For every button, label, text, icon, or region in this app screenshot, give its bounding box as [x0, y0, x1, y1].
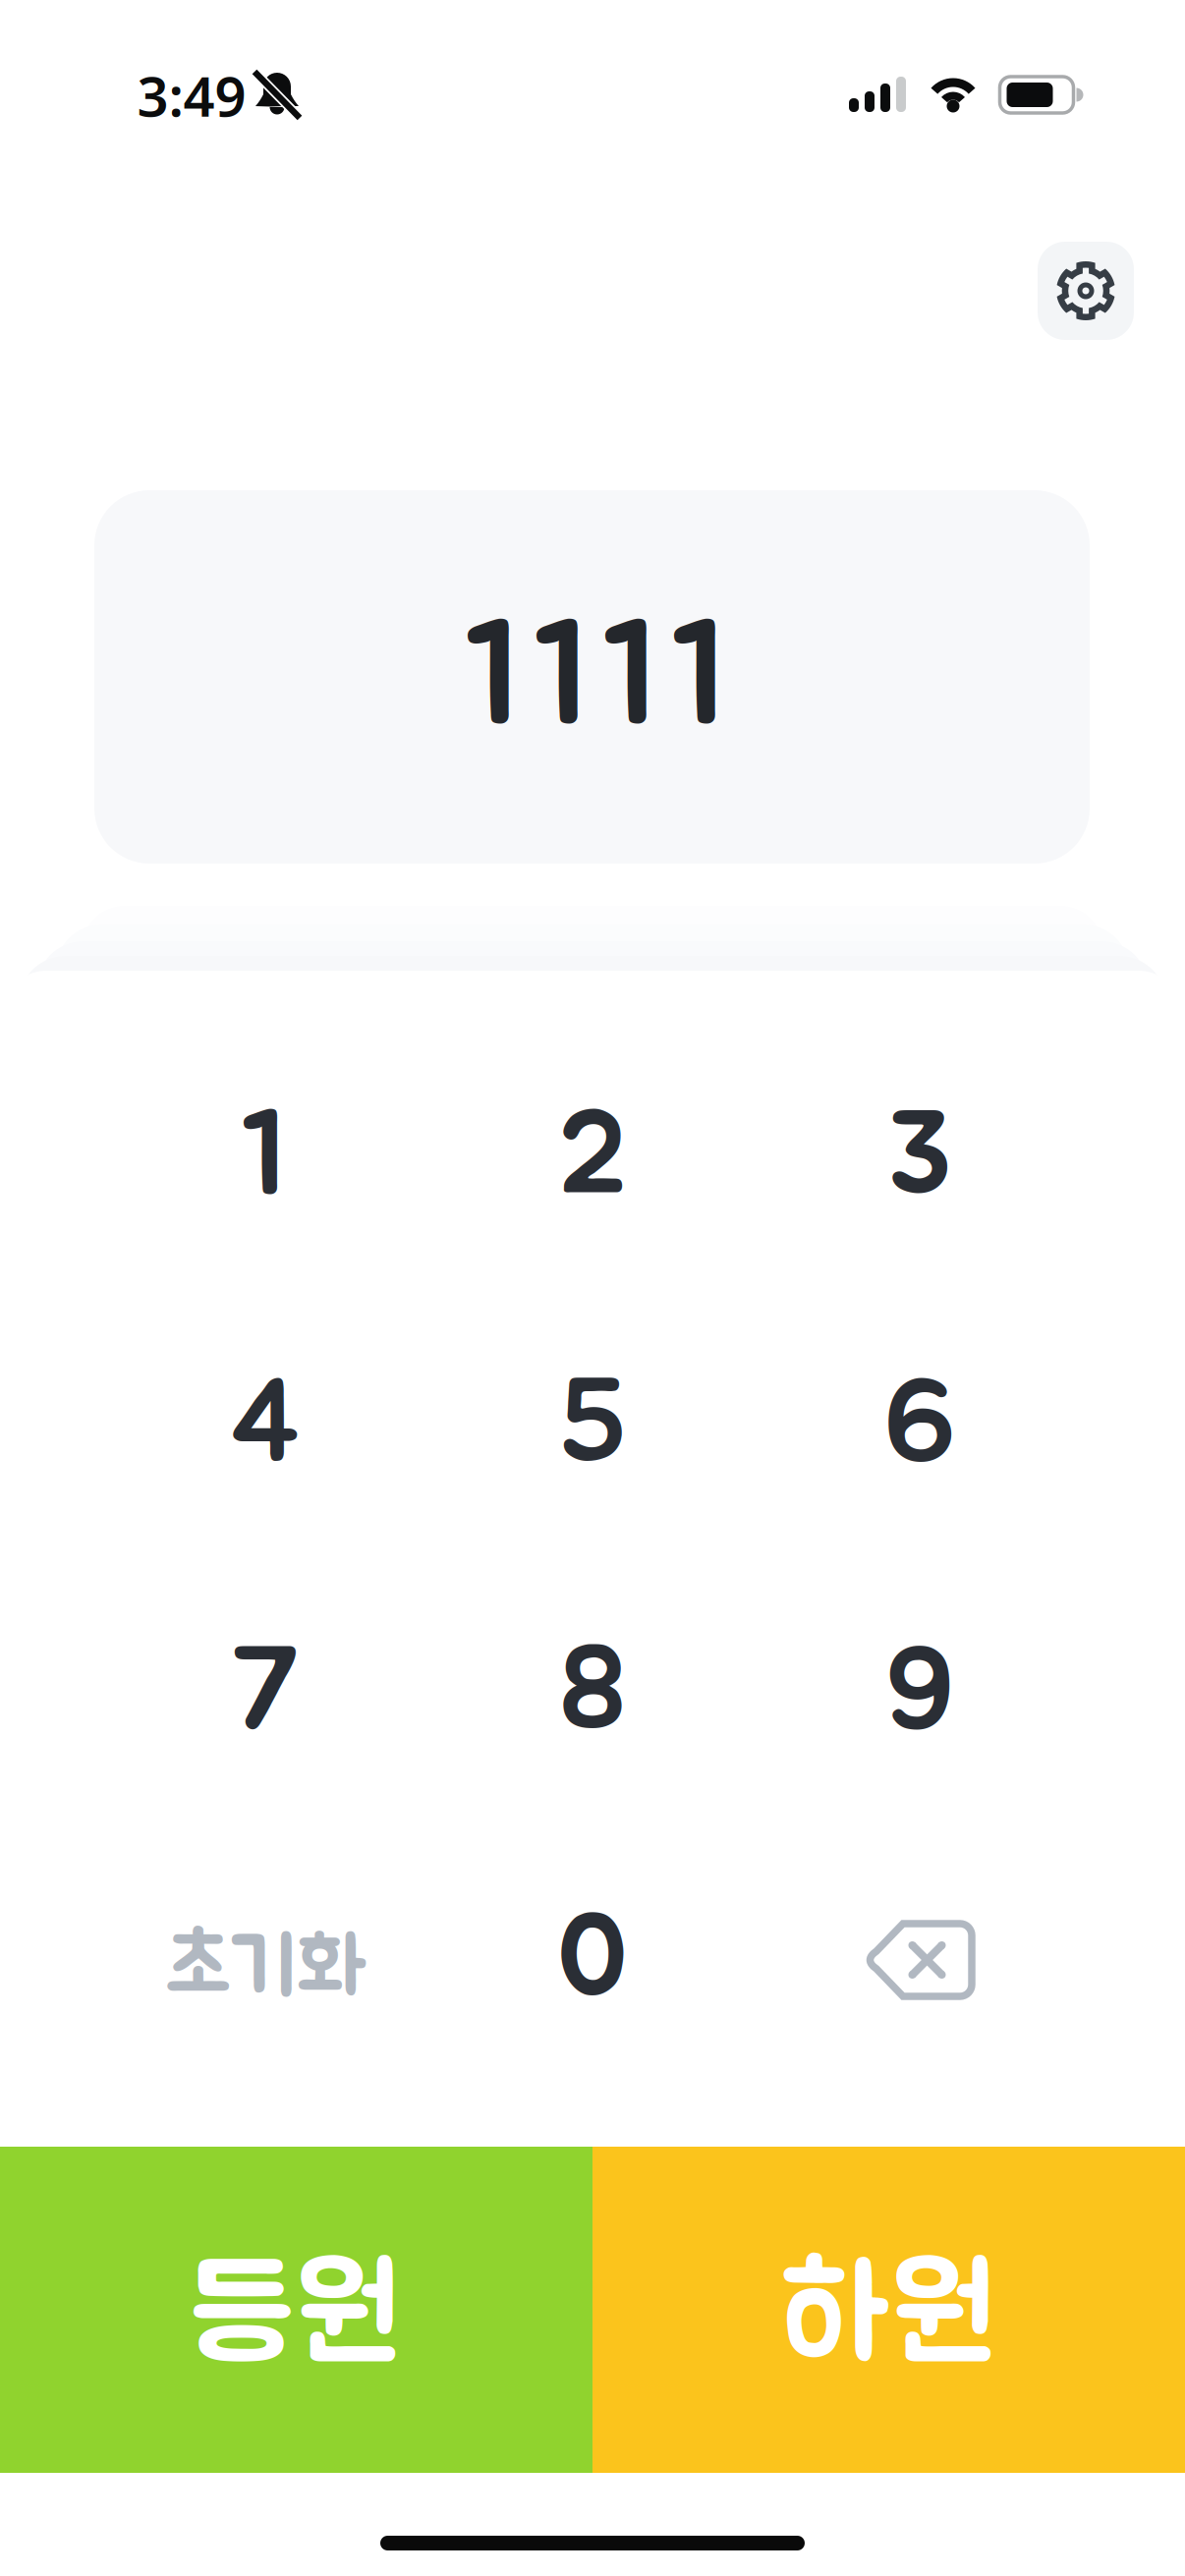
button[interactable]: 4	[102, 1292, 429, 1560]
staticText: 2	[559, 1100, 626, 1217]
button[interactable]	[756, 1826, 1083, 2094]
staticText: 0	[557, 1903, 628, 2020]
button[interactable]: 6	[756, 1292, 1083, 1560]
button[interactable]: 9	[756, 1560, 1083, 1827]
staticText: 5	[559, 1368, 626, 1484]
staticText: 8	[559, 1635, 626, 1752]
button[interactable]: 초기화	[102, 1835, 429, 2102]
staticText: 3:49	[137, 59, 246, 132]
staticText: 4	[228, 1368, 302, 1484]
button[interactable]: 0	[429, 1828, 756, 2095]
staticText: 6	[884, 1368, 956, 1484]
staticText: 하원	[781, 2253, 997, 2382]
staticText: 초기화	[166, 1929, 365, 2009]
staticText: 7	[230, 1635, 301, 1752]
staticText: 등원	[191, 2253, 401, 2382]
button[interactable]: 2	[429, 1025, 756, 1292]
button[interactable]: 1	[102, 1025, 429, 1292]
staticText: 3	[888, 1100, 952, 1217]
button[interactable]: 8	[429, 1560, 756, 1827]
button[interactable]: 등원	[0, 2147, 592, 2473]
button[interactable]: 3	[756, 1025, 1083, 1292]
button[interactable]	[1038, 242, 1134, 340]
button[interactable]: 하원	[592, 2147, 1185, 2473]
staticText: 1111	[465, 609, 730, 752]
button[interactable]: 7	[102, 1560, 429, 1827]
staticText: 1	[241, 1100, 289, 1217]
staticText: 9	[885, 1635, 954, 1752]
button[interactable]: 5	[429, 1292, 756, 1560]
